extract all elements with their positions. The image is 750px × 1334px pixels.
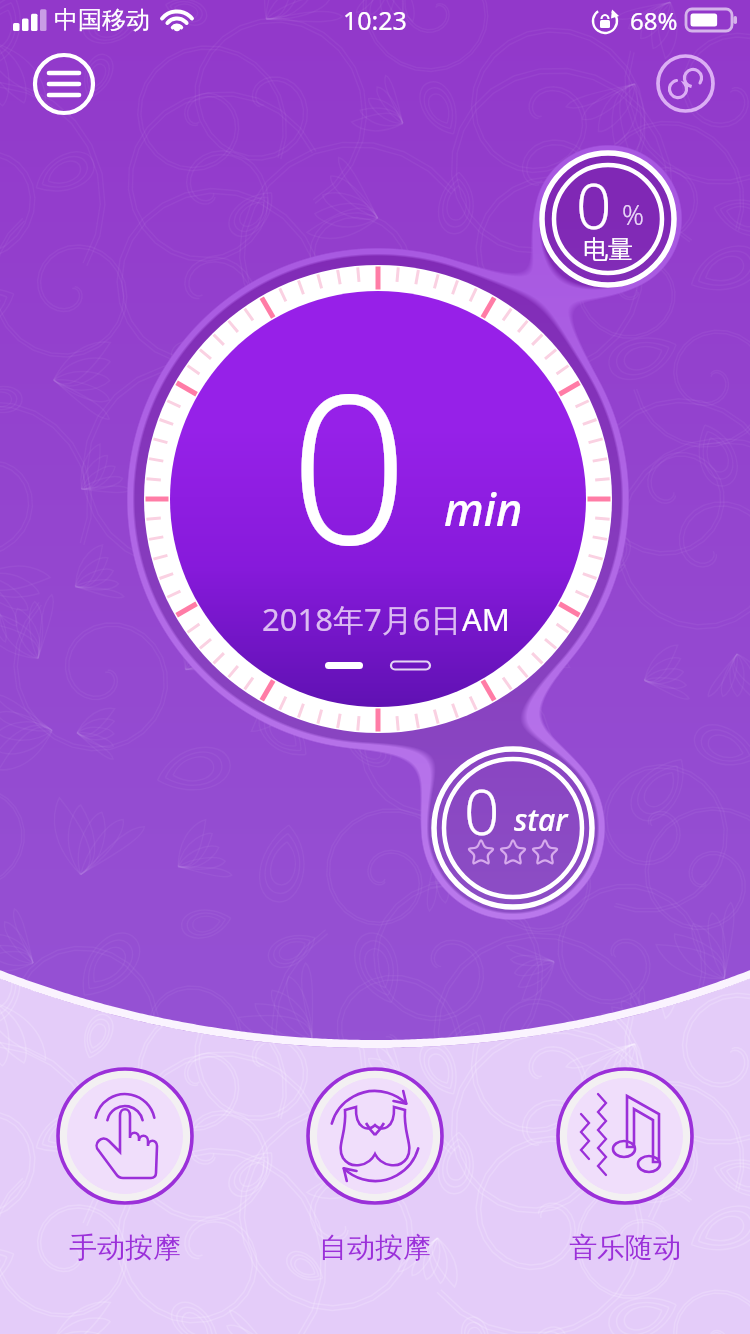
button[interactable]: 手动按摩: [20, 1058, 230, 1273]
staticText: %: [622, 196, 644, 233]
staticText: 0: [290, 323, 409, 605]
staticText: 手动按摩: [69, 1230, 181, 1265]
staticText: 2018年7月6日: [262, 598, 462, 640]
button[interactable]: Connect device: [653, 51, 718, 116]
staticText: 0: [576, 163, 612, 247]
staticText: 电量: [583, 234, 633, 265]
staticText: 自动按摩: [319, 1230, 431, 1265]
staticText: 中国移动: [54, 5, 150, 35]
staticText: 10:23: [343, 3, 407, 37]
button[interactable]: 音乐随动: [520, 1058, 730, 1273]
staticText: min: [444, 478, 523, 539]
staticText: 0: [464, 769, 500, 853]
button[interactable]: 0: [428, 743, 598, 913]
staticText: 68%: [630, 4, 678, 37]
staticText: 音乐随动: [569, 1230, 681, 1265]
staticText: star: [514, 799, 568, 840]
button[interactable]: 自动按摩: [270, 1058, 480, 1273]
staticText: AM: [462, 598, 510, 640]
button[interactable]: 0: [536, 147, 680, 291]
button[interactable]: Menu: [32, 52, 96, 116]
